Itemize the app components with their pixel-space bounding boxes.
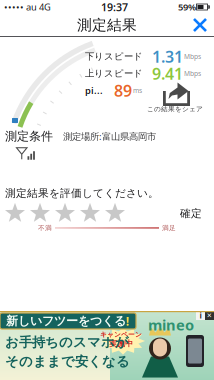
- staticText: •••••: [4, 1, 24, 13]
- button[interactable]: キャンペーン: [0, 311, 214, 380]
- staticText: 19:37: [101, 0, 128, 14]
- staticText: !: [126, 313, 129, 329]
- button[interactable]: Close: [186, 14, 214, 36]
- staticText: Mbps: [184, 52, 201, 61]
- staticText: 9.41: [152, 63, 183, 84]
- staticText: 測定結果: [77, 16, 137, 34]
- staticText: 測定場所:富山県高岡市: [63, 130, 156, 143]
- staticText: 確定: [180, 207, 202, 220]
- staticText: 下りスピード: [85, 51, 143, 62]
- staticText: 上りスピード: [85, 68, 143, 79]
- button[interactable]: 確定: [172, 204, 210, 223]
- staticText: 新しいフツーをつくる: [6, 314, 126, 328]
- staticText: 59%: [178, 1, 196, 13]
- staticText: 不満: [38, 224, 52, 232]
- button[interactable]: この結果をシェア: [144, 82, 214, 113]
- staticText: この結果をシェア: [147, 105, 203, 113]
- staticText: ✕: [206, 312, 212, 319]
- staticText: pi...: [85, 84, 103, 97]
- staticText: 1.31: [152, 46, 183, 67]
- staticText: Mbps: [184, 69, 201, 78]
- staticText: そのままで安くなる: [5, 353, 130, 370]
- staticText: 89: [114, 80, 132, 101]
- staticText: 実施中: [109, 339, 133, 348]
- staticText: i: [199, 310, 201, 321]
- staticText: 測定結果を評価してください。: [5, 187, 159, 200]
- staticText: 4G: [39, 1, 51, 13]
- staticText: ms: [133, 86, 142, 95]
- staticText: キャンペーン: [100, 330, 142, 339]
- staticText: お手持ちのスマホが: [5, 334, 129, 350]
- staticText: au: [24, 1, 39, 13]
- staticText: mineo: [148, 315, 194, 334]
- staticText: 満足: [162, 224, 176, 232]
- staticText: 測定条件: [5, 129, 53, 144]
